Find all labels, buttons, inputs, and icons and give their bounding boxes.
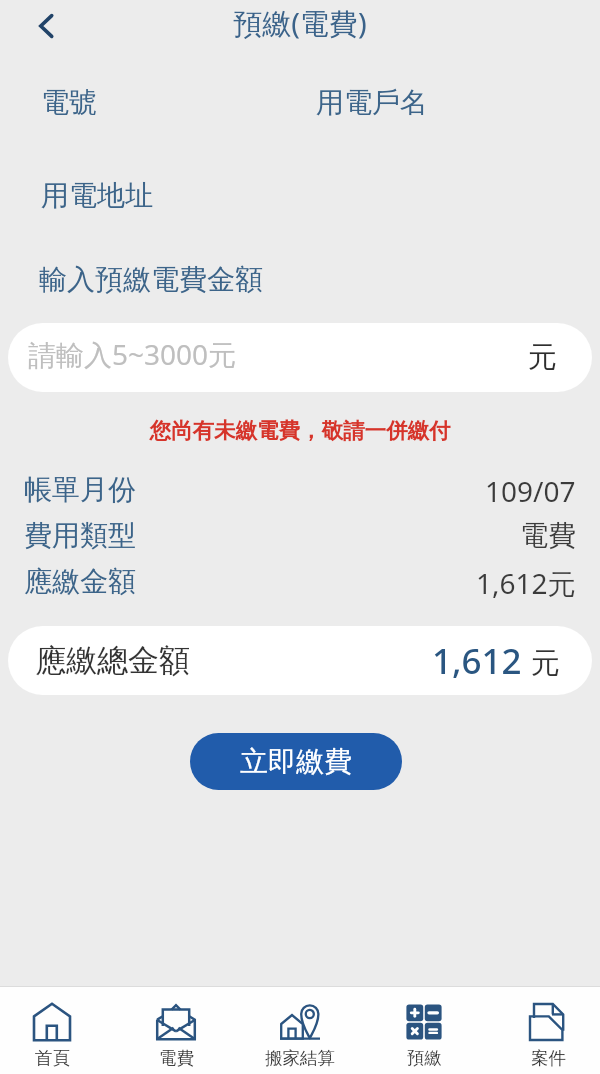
staticText: 元 (531, 645, 560, 682)
staticText: 應繳總金額 (35, 641, 190, 680)
staticText: 輸入預繳電費金額 (39, 262, 263, 297)
staticText: 電費 (159, 1047, 194, 1069)
staticText: 用電地址 (41, 178, 153, 213)
staticText: 109/07 (485, 472, 576, 510)
button[interactable]: 請輸入5~3000元 (8, 323, 592, 392)
staticText: 請輸入5~3000元 (28, 335, 237, 373)
staticText: 預繳(電費) (0, 3, 600, 43)
staticText: 1,612元 (476, 564, 576, 602)
staticText: 應繳金額 (24, 564, 136, 599)
staticText: 案件 (531, 1047, 566, 1069)
staticText: 電費 (520, 518, 576, 553)
button[interactable]: 立即繳費 (190, 733, 402, 790)
staticText: 元 (528, 339, 557, 376)
button[interactable]: Moving settlement (260, 1002, 340, 1069)
staticText: 您尚有未繳電費，敬請一併繳付 (0, 417, 600, 444)
button[interactable]: Electricity bill (136, 1002, 216, 1069)
button[interactable]: Prepay (384, 1002, 464, 1069)
staticText: 費用類型 (24, 518, 136, 553)
staticText: 首頁 (35, 1047, 70, 1069)
staticText: 電號 (41, 85, 97, 120)
button[interactable]: Home (12, 1002, 92, 1069)
staticText: 立即繳費 (240, 744, 352, 779)
staticText: 搬家結算 (265, 1047, 335, 1069)
staticText: 1,612 (432, 637, 522, 685)
button[interactable]: Back (25, 5, 67, 47)
staticText: 帳單月份 (24, 472, 136, 507)
staticText: 用電戶名 (316, 85, 428, 120)
staticText: 預繳 (407, 1047, 442, 1069)
button[interactable]: Cases (508, 1002, 588, 1069)
